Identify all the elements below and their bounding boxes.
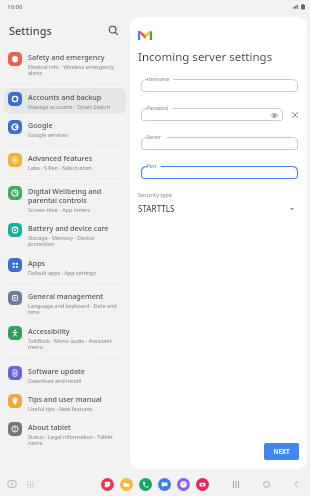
button[interactable]: NEXT: [264, 443, 299, 460]
button[interactable]: About tablet: [4, 418, 126, 451]
staticText: Software update: [28, 366, 85, 376]
button[interactable]: Accounts and backup: [4, 88, 126, 114]
staticText: Port: [147, 163, 157, 169]
button[interactable]: Google: [4, 116, 126, 142]
button[interactable]: messages: [158, 478, 171, 491]
button[interactable]: Tips and user manual: [4, 390, 126, 416]
button[interactable]: Home: [260, 478, 273, 491]
staticText: Battery and device care: [28, 223, 109, 233]
staticText: Google: [28, 120, 53, 130]
staticText: STARTTLS: [138, 203, 289, 214]
staticText: Storage · Memory · Device protection: [28, 234, 121, 248]
staticText: Status · Legal information · Tablet name: [28, 433, 121, 447]
button[interactable]: Digital Wellbeing and parental controls: [4, 182, 126, 217]
button[interactable]: browser: [177, 478, 190, 491]
button[interactable]: Recents: [230, 478, 243, 491]
button[interactable]: All apps: [24, 478, 36, 490]
staticText: Download and install: [28, 377, 82, 384]
button[interactable]: Search settings: [104, 21, 122, 39]
button[interactable]: phone: [139, 478, 152, 491]
staticText: Tips and user manual: [28, 394, 102, 404]
staticText: Medical info · Wireless emergency alerts: [28, 63, 121, 77]
staticText: Manage accounts · Smart Switch: [28, 103, 110, 110]
button[interactable]: Safety and emergency: [4, 48, 126, 81]
button[interactable]: note: [101, 478, 114, 491]
button[interactable]: Back: [290, 478, 303, 491]
button[interactable]: STARTTLS: [138, 203, 301, 214]
staticText: 10:00: [7, 3, 23, 11]
staticText: Password: [147, 105, 168, 111]
staticText: Default apps · App settings: [28, 269, 97, 276]
staticText: Apps: [28, 258, 46, 268]
staticText: Username: [147, 76, 170, 82]
staticText: General management: [28, 291, 104, 301]
button[interactable]: Battery and device care: [4, 219, 126, 252]
button[interactable]: General management: [4, 287, 126, 320]
button[interactable]: Accessibility: [4, 322, 126, 355]
staticText: NEXT: [273, 447, 290, 456]
button[interactable]: Recent apps tray: [6, 478, 18, 490]
staticText: Language and keyboard · Date and time: [28, 302, 121, 316]
staticText: Accounts and backup: [28, 92, 102, 102]
button[interactable]: Clear password: [289, 109, 301, 121]
staticText: Accessibility: [28, 326, 70, 336]
button[interactable]: Apps: [4, 254, 126, 280]
staticText: Incoming server settings: [138, 49, 273, 65]
staticText: Advanced features: [28, 153, 93, 163]
button[interactable]: Show password: [269, 110, 279, 120]
staticText: Safety and emergency: [28, 52, 105, 62]
staticText: Server: [147, 134, 161, 140]
button[interactable]: Username: [138, 76, 301, 95]
button[interactable]: Server: [138, 134, 301, 153]
button[interactable]: camera: [196, 478, 209, 491]
staticText: Security type: [138, 191, 172, 199]
staticText: Labs · S Pen · Side button: [28, 164, 92, 171]
staticText: About tablet: [28, 422, 71, 432]
staticText: Google services: [28, 131, 68, 138]
staticText: Settings: [9, 23, 104, 38]
staticText: Digital Wellbeing and parental controls: [28, 186, 121, 205]
staticText: TalkBack · Mono audio · Assistant menu: [28, 337, 121, 351]
staticText: Screen time · App timers: [28, 206, 90, 213]
staticText: Useful tips · New features: [28, 405, 93, 412]
button[interactable]: Advanced features: [4, 149, 126, 175]
button[interactable]: Port: [138, 163, 301, 182]
button[interactable]: files: [120, 478, 133, 491]
button[interactable]: Software update: [4, 362, 126, 388]
button[interactable]: Password: [138, 105, 286, 124]
